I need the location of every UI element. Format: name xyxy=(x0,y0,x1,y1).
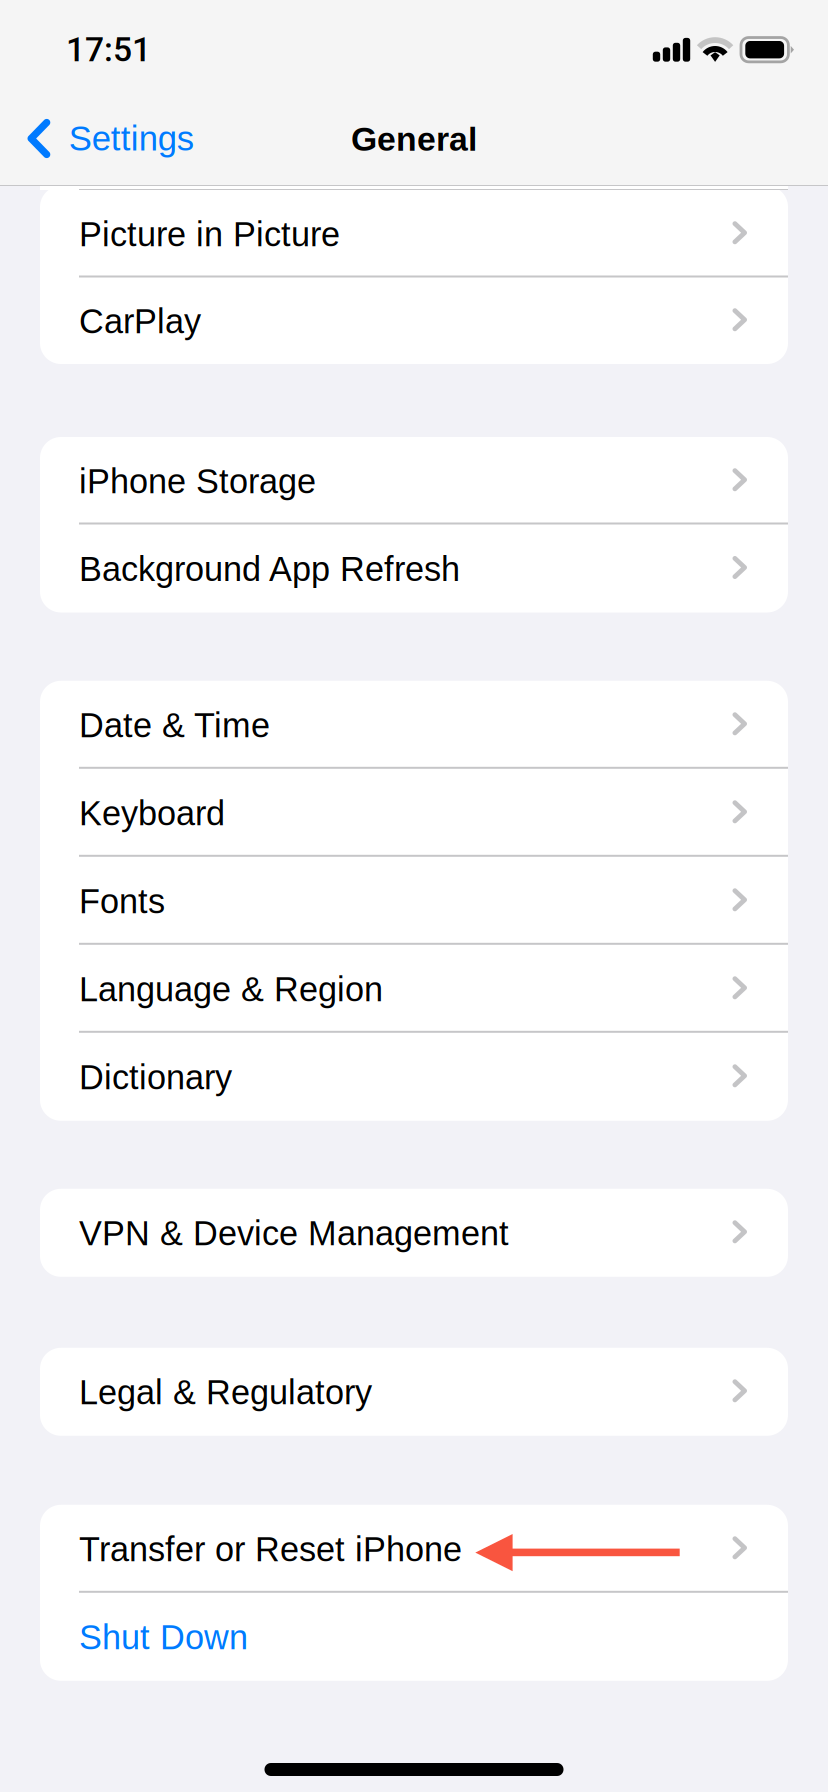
button[interactable]: Picture in Picture xyxy=(40,190,788,277)
button[interactable]: Background App Refresh xyxy=(40,524,788,612)
staticText: Transfer or Reset iPhone xyxy=(79,1530,462,1568)
button[interactable]: Fonts xyxy=(40,857,788,945)
staticText: Background App Refresh xyxy=(79,550,460,588)
staticText: VPN & Device Management xyxy=(79,1214,509,1252)
staticText: Legal & Regulatory xyxy=(79,1373,372,1411)
staticText: Date & Time xyxy=(79,706,270,744)
staticText: Settings xyxy=(69,119,194,158)
staticText: iPhone Storage xyxy=(79,462,316,500)
button[interactable]: Legal & Regulatory xyxy=(40,1348,788,1436)
button[interactable]: Keyboard xyxy=(40,769,788,857)
button[interactable]: Dictionary xyxy=(40,1033,788,1121)
staticText: 17:51 xyxy=(66,30,151,69)
staticText: CarPlay xyxy=(79,302,201,340)
staticText: Fonts xyxy=(79,882,165,920)
button[interactable]: Shut Down xyxy=(40,1593,788,1681)
staticText: General xyxy=(351,120,477,158)
button[interactable]: iPhone Storage xyxy=(40,437,788,524)
button[interactable]: Language & Region xyxy=(40,945,788,1033)
button[interactable]: Transfer or Reset iPhone xyxy=(40,1505,788,1593)
staticText: Keyboard xyxy=(79,794,225,832)
button[interactable]: Date & Time xyxy=(40,681,788,769)
staticText: Picture in Picture xyxy=(79,215,340,253)
staticText: Language & Region xyxy=(79,970,383,1008)
button[interactable]: CarPlay xyxy=(40,277,788,364)
staticText: Shut Down xyxy=(79,1618,248,1656)
staticText: Dictionary xyxy=(79,1058,232,1096)
button[interactable]: VPN & Device Management xyxy=(40,1189,788,1277)
button[interactable]: Settings xyxy=(0,88,194,185)
